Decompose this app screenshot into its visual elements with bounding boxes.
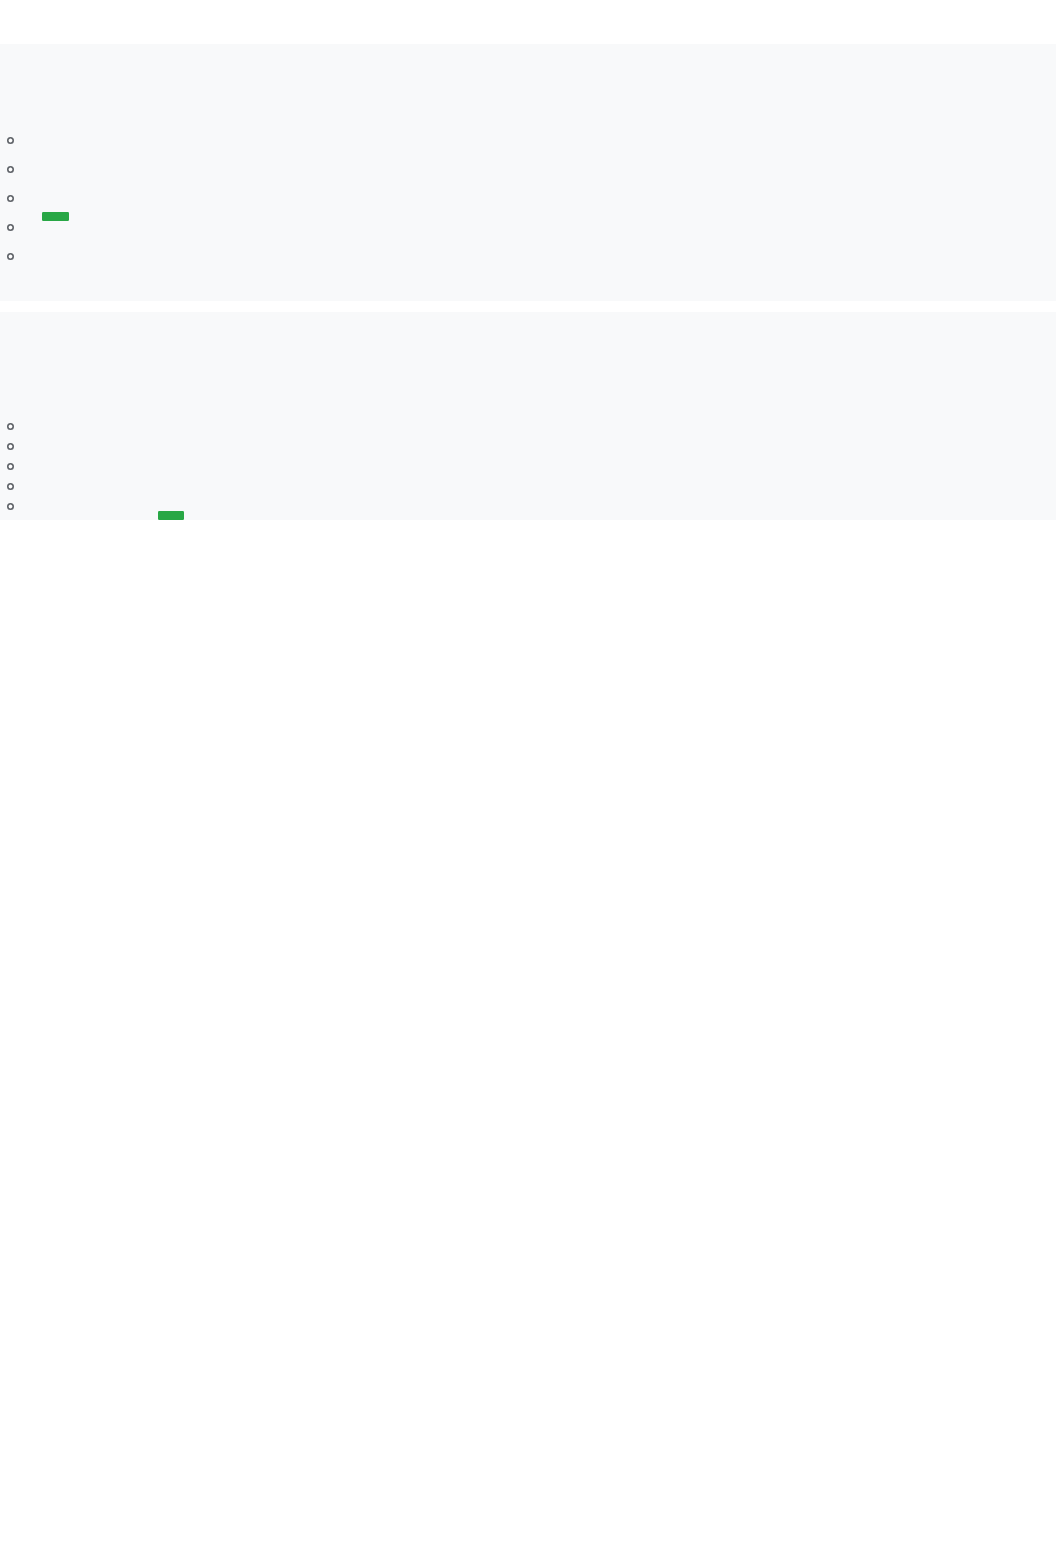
button[interactable]: Choice 1 [0,421,1056,431]
button[interactable]: Choice 2 [7,443,14,450]
button[interactable]: Option 5 [7,253,14,260]
button[interactable]: Option 5 [0,249,1056,264]
button[interactable]: Option 4 [0,220,1056,235]
button[interactable]: Option 2 [7,166,14,173]
button[interactable]: Choice 3 [7,463,14,470]
button[interactable]: Option 1 [0,133,1056,148]
button[interactable]: Choice 2 [0,441,1056,451]
button[interactable]: Choice 5 [0,501,1056,511]
button[interactable]: Choice 4 [0,481,1056,491]
button[interactable]: Choice 3 [0,461,1056,471]
button[interactable]: Choice 5 [7,503,14,510]
button[interactable]: Option 2 [0,162,1056,177]
button[interactable]: Next [158,511,184,520]
button[interactable]: Option 3 [0,191,1056,206]
button[interactable]: Submit [42,212,69,221]
button[interactable]: Choice 4 [7,483,14,490]
button[interactable]: Option 3 [7,195,14,202]
button[interactable]: Option 4 [7,224,14,231]
button[interactable]: Choice 1 [7,423,14,430]
button[interactable]: Option 1 [7,137,14,144]
